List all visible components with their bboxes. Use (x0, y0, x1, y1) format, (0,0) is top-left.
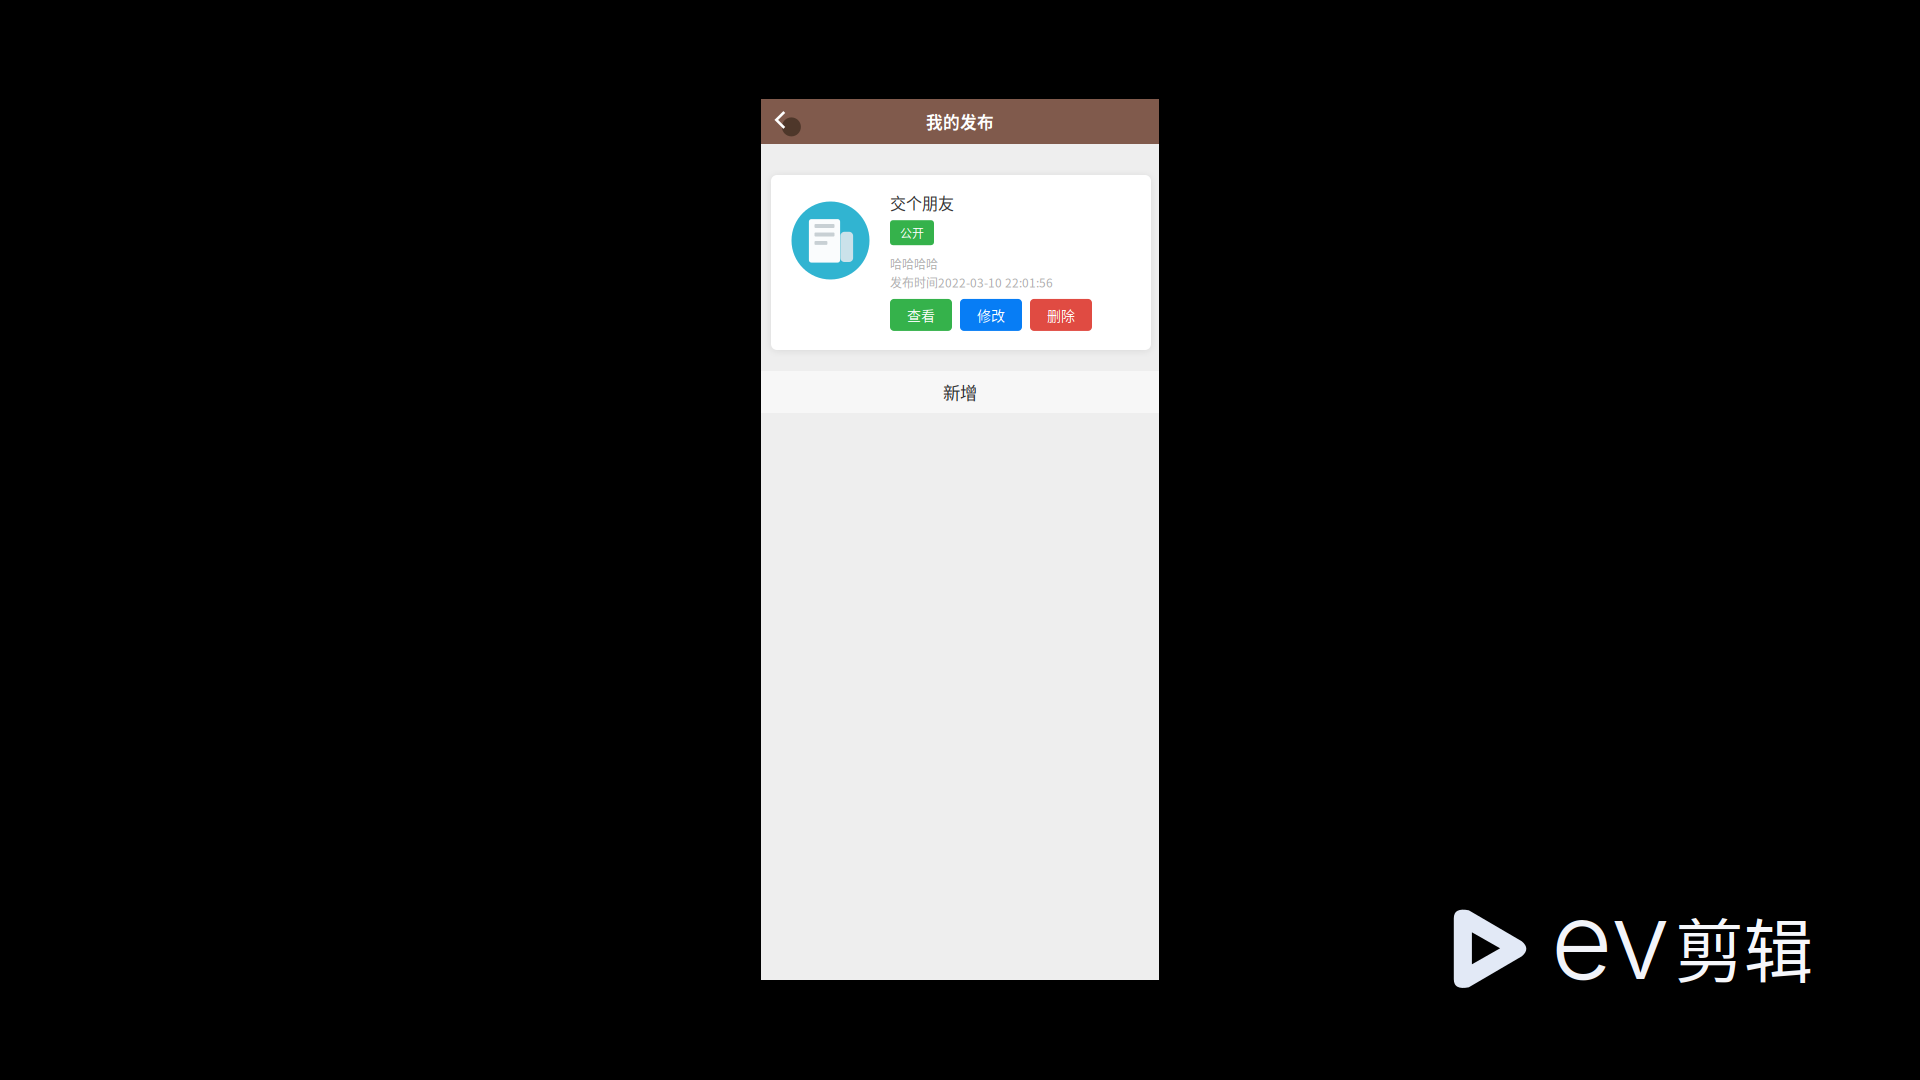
staticText: 修改 (977, 305, 1005, 325)
staticText: 查看 (907, 305, 935, 325)
staticText: 公开 (900, 224, 924, 241)
staticText: ev (1551, 876, 1670, 1005)
staticText: 删除 (1047, 305, 1075, 325)
staticText: 哈哈哈哈 (890, 255, 938, 273)
staticText: 我的发布 (926, 109, 994, 133)
staticText: 交个朋友 (890, 191, 954, 214)
staticText: 剪辑 (1675, 897, 1813, 997)
button[interactable]: Back (761, 99, 805, 144)
button[interactable]: 删除 (1030, 299, 1092, 331)
staticText: 新增 (943, 379, 977, 405)
button[interactable]: 新增 (761, 371, 1159, 413)
button[interactable]: 修改 (960, 299, 1022, 331)
staticText: 发布时间2022-03-10 22:01:56 (890, 273, 1053, 291)
button[interactable]: 查看 (890, 299, 952, 331)
